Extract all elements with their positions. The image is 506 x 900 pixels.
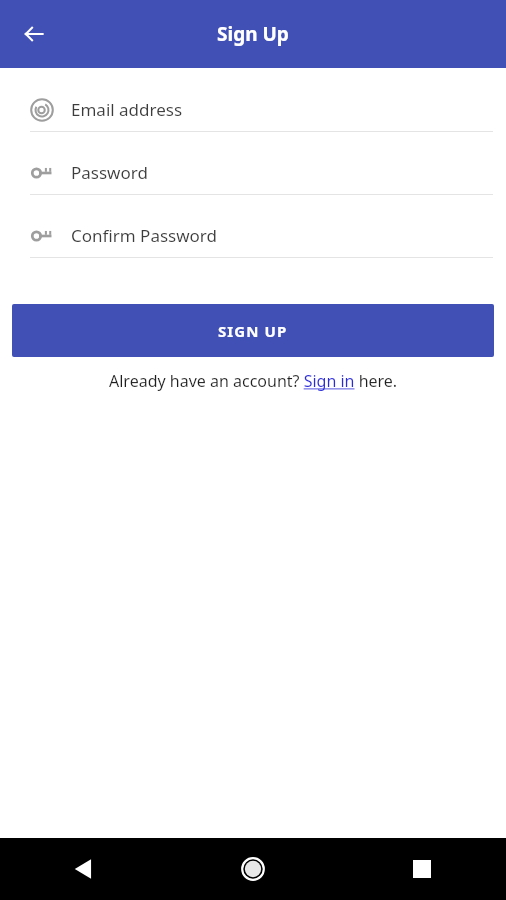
button[interactable]: Confirm Password bbox=[0, 214, 506, 277]
staticText: SIGN UP bbox=[218, 321, 288, 341]
staticText: Email address bbox=[71, 98, 183, 121]
button[interactable]: Back bbox=[14, 14, 54, 54]
button[interactable]: Back bbox=[0, 838, 168, 900]
button[interactable]: Already have an account? Sign in here. bbox=[109, 370, 398, 392]
staticText: Password bbox=[71, 161, 148, 184]
button[interactable]: Recent apps bbox=[337, 838, 506, 900]
staticText: Sign Up bbox=[217, 21, 289, 47]
button[interactable]: Password bbox=[0, 151, 506, 214]
button[interactable]: SIGN UP bbox=[12, 304, 494, 357]
button[interactable]: Email address bbox=[0, 88, 506, 151]
button[interactable]: Home bbox=[168, 838, 337, 900]
staticText: Confirm Password bbox=[71, 224, 217, 247]
